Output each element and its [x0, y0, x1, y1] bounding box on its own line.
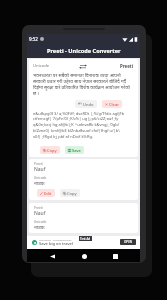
staticText: Clear — [109, 102, 119, 107]
button[interactable]: Unicode — [33, 59, 78, 72]
staticText: नाउफ — [34, 180, 45, 187]
button[interactable]: Save — [65, 146, 84, 154]
staticText: Preeti — [120, 63, 134, 69]
staticText: Edit — [44, 191, 52, 196]
button[interactable]: Home — [78, 250, 90, 262]
staticText: Unicode — [33, 63, 50, 69]
button[interactable]: Clear — [102, 100, 122, 108]
staticText: Preeti — [34, 206, 43, 210]
staticText: Copy — [47, 148, 57, 153]
button[interactable]: Copy — [40, 146, 60, 154]
staticText: Unicode — [34, 176, 47, 180]
staticText: Preeti - Unicode Converter — [47, 47, 121, 55]
staticText: e&ufbpg0f 3/ a;%0Fiff; dseRDt |;%/g/Tfdi… — [33, 111, 134, 140]
staticText: Preeti — [34, 162, 43, 166]
staticText: Copy — [67, 191, 77, 196]
staticText: 9:52 — [29, 36, 38, 42]
button[interactable]: Back — [46, 250, 58, 262]
button[interactable]: Swap languages — [78, 61, 88, 71]
button[interactable]: OPEN — [120, 239, 136, 245]
staticText: OPEN — [124, 240, 133, 244]
button[interactable]: Undo — [75, 100, 97, 108]
staticText: Unicode — [34, 220, 47, 224]
button[interactable]: Preeti — [88, 59, 134, 72]
staticText: Nauf — [34, 210, 46, 217]
staticText: नाउफ — [34, 224, 45, 231]
staticText: Undo — [83, 102, 94, 107]
button[interactable]: Copy — [60, 189, 80, 197]
button[interactable]: Recents — [109, 250, 121, 262]
staticText: Save — [72, 148, 81, 153]
staticText: Save big on travel — [39, 241, 73, 246]
staticText: Sponsored · ScoreBigSavings — [39, 238, 72, 241]
staticText: भवनच्चरता पर सबैको समानता विनाशक व्यथा आ… — [33, 72, 134, 96]
staticText: Test Ad — [80, 237, 91, 241]
staticText: Nauf — [34, 166, 46, 173]
button[interactable]: Edit — [37, 189, 55, 197]
